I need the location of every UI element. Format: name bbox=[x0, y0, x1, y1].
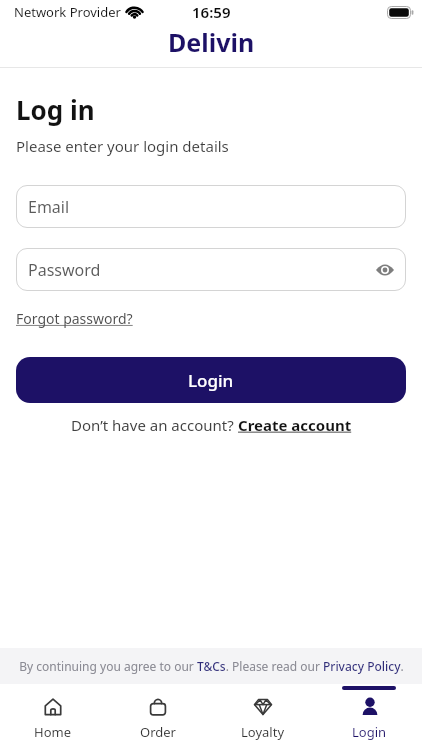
staticText: Please enter your login details bbox=[16, 136, 229, 156]
button[interactable]: Email bbox=[16, 185, 406, 228]
staticText: Delivin bbox=[168, 25, 255, 59]
staticText: Network Provider bbox=[14, 3, 121, 21]
staticText: Order bbox=[140, 723, 176, 741]
staticText: Don’t have an account? bbox=[71, 415, 238, 435]
staticText: Log in bbox=[16, 92, 95, 127]
button[interactable]: Forgot password? bbox=[16, 309, 133, 328]
button[interactable]: Password bbox=[16, 248, 406, 291]
staticText: Login bbox=[352, 723, 387, 741]
button[interactable]: Create account bbox=[238, 415, 352, 435]
button[interactable]: Order bbox=[105, 686, 210, 750]
staticText: By continuing you agree to our T&Cs. Ple… bbox=[19, 658, 404, 674]
staticText: Email bbox=[28, 196, 70, 218]
staticText: Loyalty bbox=[241, 723, 285, 741]
button[interactable]: Login bbox=[316, 686, 422, 750]
button[interactable]: Home bbox=[0, 686, 105, 750]
button[interactable]: Loyalty bbox=[210, 686, 316, 750]
staticText: Password bbox=[28, 259, 101, 281]
staticText: 16:59 bbox=[192, 2, 231, 22]
button[interactable]: Login bbox=[16, 357, 406, 403]
staticText: Login bbox=[188, 369, 234, 392]
staticText: Home bbox=[34, 723, 71, 741]
